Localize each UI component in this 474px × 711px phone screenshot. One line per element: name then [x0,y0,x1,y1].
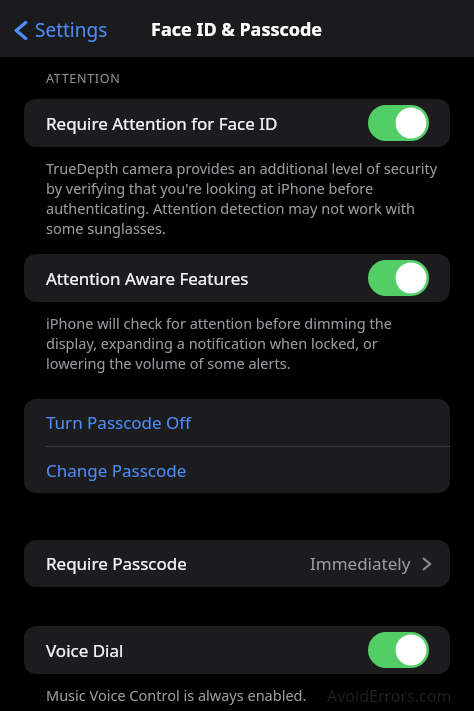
staticText: Immediately [310,552,411,575]
button[interactable]: Toggle setting [368,105,429,141]
staticText: Voice Dial [46,639,124,662]
button[interactable]: Toggle setting [368,260,429,296]
staticText: Face ID & Passcode [151,17,323,42]
staticText: Require Passcode [46,552,187,575]
button[interactable]: Settings [13,13,109,47]
staticText: Attention Aware Features [46,267,249,290]
staticText: AvoidErrors.com [327,685,452,707]
staticText: ATTENTION [46,70,121,87]
staticText: iPhone will check for attention before d… [46,313,440,373]
button[interactable]: Require Attention for Face ID [24,99,450,147]
button[interactable]: Turn Passcode Off [24,399,450,446]
button[interactable]: Require Passcode [24,540,450,587]
staticText: Settings [35,17,108,43]
staticText: Music Voice Control is always enabled. [46,685,307,705]
staticText: Turn Passcode Off [46,411,192,434]
button[interactable]: Toggle setting [368,632,429,668]
staticText: Require Attention for Face ID [46,112,278,135]
staticText: TrueDepth camera provides an additional … [46,158,438,238]
button[interactable]: Change Passcode [24,447,450,493]
staticText: Change Passcode [46,459,187,482]
button[interactable]: Attention Aware Features [24,254,450,302]
button[interactable]: Voice Dial [24,626,450,674]
